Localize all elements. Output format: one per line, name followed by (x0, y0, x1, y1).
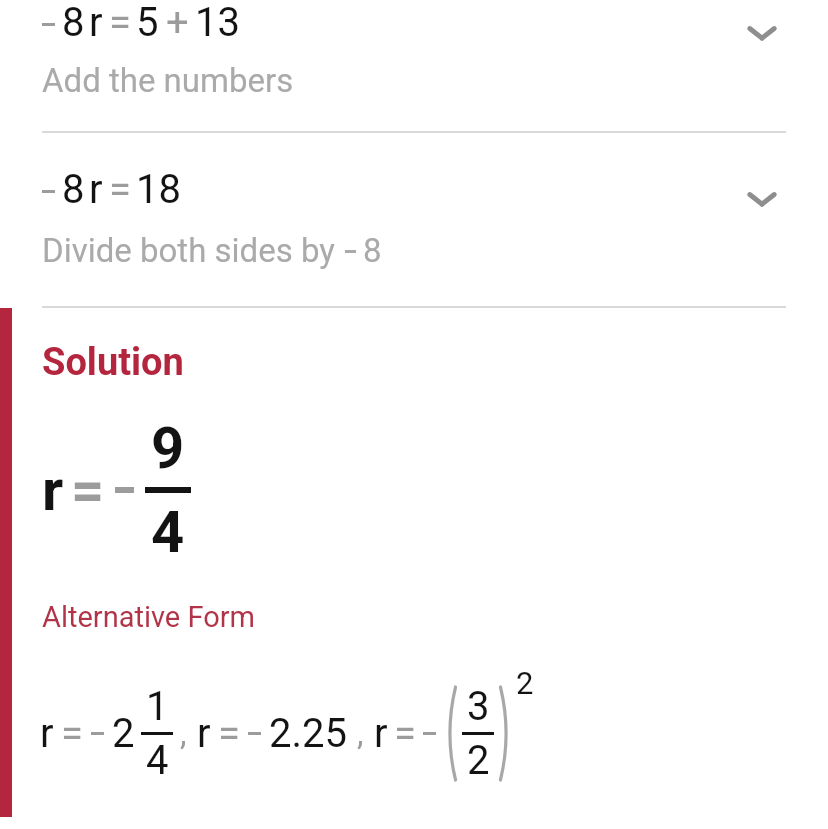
staticText: 2.25 (269, 710, 347, 757)
staticText: = (109, 166, 131, 213)
staticText: r (197, 710, 211, 757)
staticText: 8 (62, 0, 85, 46)
staticText: = (218, 710, 240, 757)
button[interactable]: 8 (0, 0, 828, 131)
staticText: + (166, 0, 189, 46)
staticText: 4 (146, 737, 169, 784)
staticText: 5 (136, 0, 159, 46)
staticText: 13 (195, 0, 240, 46)
staticText: Add the numbers (42, 61, 294, 100)
staticText: , (357, 714, 364, 753)
button[interactable]: 8 (0, 133, 828, 306)
staticText: 18 (136, 166, 181, 213)
staticText: = (394, 710, 416, 757)
button[interactable]: Expand step (745, 182, 779, 216)
staticText: 8 (62, 166, 85, 213)
staticText: 2 (112, 710, 135, 757)
staticText: 2 (467, 737, 490, 784)
button[interactable]: Expand step (745, 16, 779, 50)
staticText: 4 (151, 498, 185, 566)
staticText: 1 (146, 683, 169, 730)
staticText: r (89, 166, 103, 213)
button[interactable]: Solution (0, 308, 828, 817)
staticText: 3 (467, 683, 490, 730)
staticText: r (42, 456, 64, 524)
staticText: Alternative Form (42, 600, 255, 634)
staticText: r (374, 710, 388, 757)
staticText: = (109, 0, 131, 46)
staticText: 8 (363, 231, 382, 270)
staticText: = (71, 456, 105, 524)
staticText: 9 (151, 414, 185, 482)
staticText: = (61, 710, 83, 757)
staticText: r (40, 710, 54, 757)
staticText: , (180, 714, 187, 753)
staticText: 2 (516, 665, 534, 701)
staticText: Divide both sides by (42, 231, 335, 270)
staticText: Solution (42, 340, 184, 385)
staticText: r (89, 0, 103, 46)
